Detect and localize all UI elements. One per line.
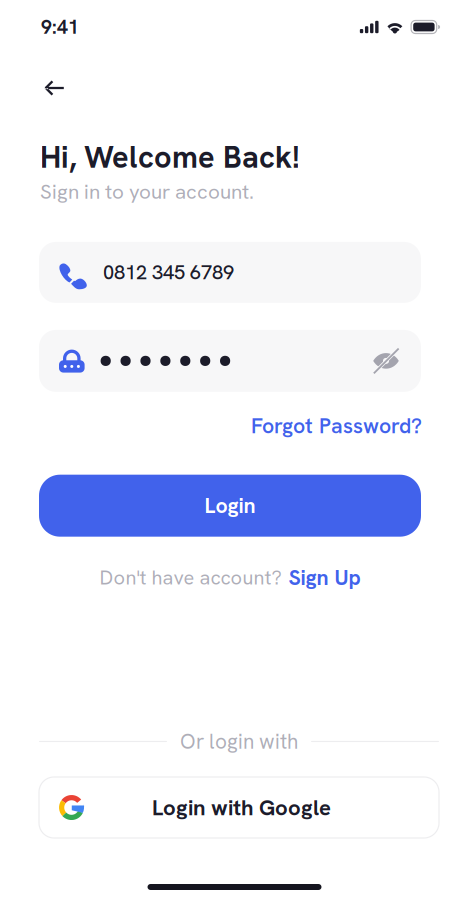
staticText: 9:41 [41, 14, 79, 40]
button[interactable]: Back [32, 76, 76, 100]
staticText: 0812 345 6789 [103, 259, 234, 285]
button[interactable]: Login [39, 475, 421, 537]
button[interactable]: Forgot Password? [251, 412, 422, 440]
button[interactable]: Sign Up [288, 564, 360, 591]
staticText: Or login with [180, 728, 298, 755]
staticText: Login [204, 492, 255, 520]
staticText: Hi, Welcome Back! [40, 137, 300, 177]
button[interactable]: Show password [365, 340, 407, 382]
button[interactable]: Login with Google [39, 777, 439, 838]
staticText: Sign Up [288, 564, 360, 591]
staticText: Forgot Password? [251, 412, 422, 440]
staticText: Sign in to your account. [40, 178, 254, 205]
staticText: Don't have account? [99, 565, 281, 591]
staticText: Login with Google [152, 793, 331, 822]
